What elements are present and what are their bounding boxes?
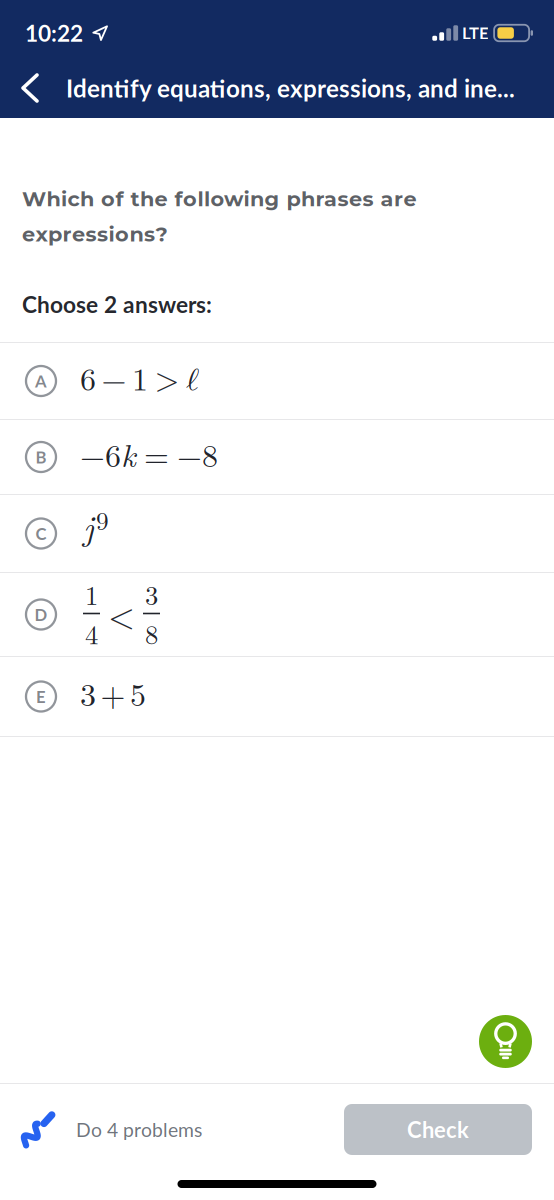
staticText: 1 xyxy=(85,575,98,613)
staticText: Do 4 problems xyxy=(76,1118,202,1141)
staticText: − xyxy=(101,354,126,400)
button[interactable]: Back xyxy=(0,75,37,101)
staticText: Which of the following phrases are xyxy=(22,186,416,211)
staticText: C xyxy=(35,523,46,543)
staticText: −8 xyxy=(177,431,218,476)
staticText: Identify equations, expressions, and ine… xyxy=(66,73,515,102)
staticText: > xyxy=(154,354,179,400)
button[interactable]: B xyxy=(0,420,554,494)
staticText: 6 xyxy=(80,354,96,400)
button[interactable]: Check xyxy=(344,1104,532,1155)
button[interactable]: C xyxy=(0,495,554,572)
staticText: A xyxy=(35,371,47,391)
staticText: 4 xyxy=(85,614,98,652)
staticText: = xyxy=(144,431,169,476)
button[interactable]: E xyxy=(0,657,554,736)
staticText: 3 xyxy=(80,670,96,715)
staticText: LTE xyxy=(462,23,489,43)
staticText: E xyxy=(36,686,46,706)
staticText: j 9 xyxy=(83,502,109,549)
staticText: B xyxy=(35,447,46,467)
staticText: 5 xyxy=(130,670,146,715)
staticText: < xyxy=(108,589,135,638)
staticText: −6k xyxy=(80,431,136,476)
staticText: ℓ xyxy=(186,365,199,397)
staticText: Check xyxy=(407,1116,469,1143)
button[interactable]: A xyxy=(0,343,554,419)
button[interactable]: Hint xyxy=(479,1015,532,1068)
staticText: D xyxy=(34,604,47,624)
staticText: Choose 2 answers: xyxy=(22,291,212,318)
button[interactable]: D xyxy=(0,573,554,656)
staticText: expressions? xyxy=(22,221,167,247)
staticText: 10:22 xyxy=(25,19,83,47)
staticText: + xyxy=(100,670,125,715)
staticText: 8 xyxy=(145,614,158,652)
staticText: 3 xyxy=(145,575,158,613)
staticText: 1 xyxy=(132,354,148,400)
